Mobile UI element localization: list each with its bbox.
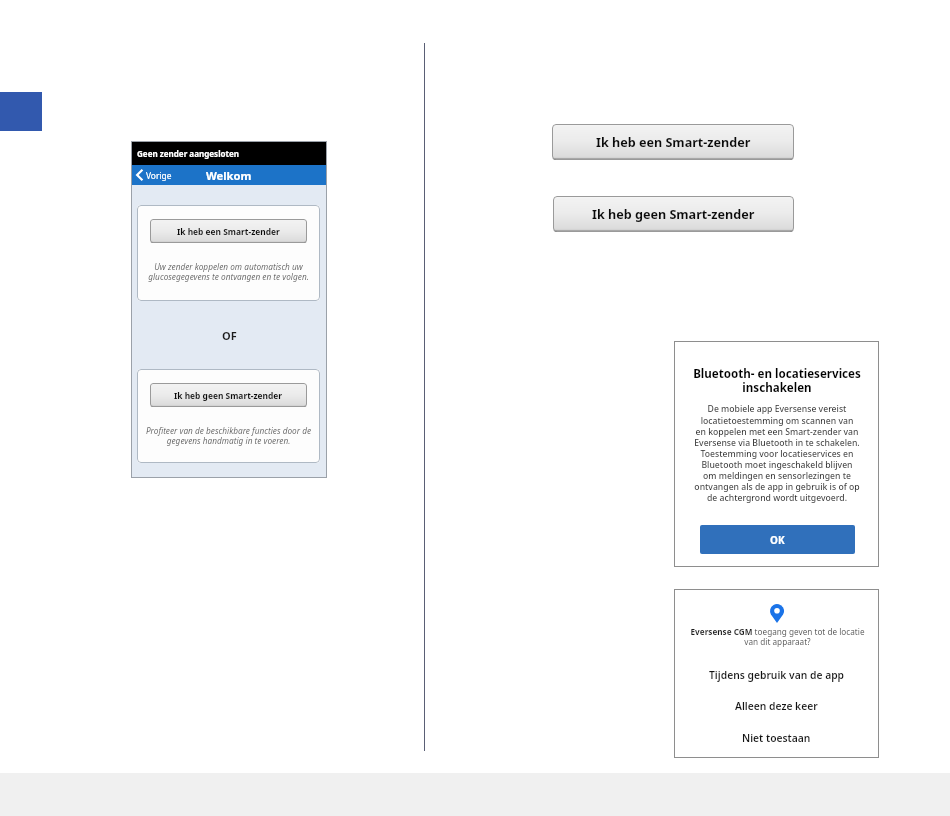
- staticText: Ik heb een Smart-zender: [596, 134, 751, 151]
- staticText: Welkom: [206, 168, 252, 183]
- staticText: Eversense CGM toegang geven tot de locat…: [690, 626, 865, 647]
- staticText: Uw zender koppelen om automatisch uw glu…: [145, 261, 312, 283]
- button[interactable]: Ik heb geen Smart-zender: [553, 196, 794, 232]
- button[interactable]: Ik heb een Smart-zender: [150, 219, 307, 243]
- staticText: Ik heb geen Smart-zender: [174, 390, 283, 401]
- other: Location: [770, 604, 784, 623]
- button[interactable]: Ik heb een Smart-zender: [552, 124, 794, 160]
- staticText: Tijdens gebruik van de app: [709, 668, 845, 682]
- staticText: OK: [770, 533, 785, 547]
- button[interactable]: Alleen deze keer: [674, 696, 879, 716]
- staticText: De mobiele app Eversense vereist locatie…: [694, 403, 860, 503]
- staticText: Geen zender aangesloten: [137, 148, 240, 159]
- staticText: Ik heb een Smart-zender: [177, 226, 280, 237]
- staticText: Ik heb geen Smart-zender: [592, 206, 755, 223]
- other: Vorige: [136, 169, 143, 181]
- button[interactable]: OK: [700, 525, 855, 554]
- staticText: Bluetooth- en locatieservices inschakele…: [693, 366, 861, 395]
- staticText: Vorige: [146, 170, 172, 181]
- button[interactable]: Ik heb geen Smart-zender: [150, 383, 307, 407]
- button[interactable]: Tijdens gebruik van de app: [674, 665, 879, 685]
- button[interactable]: Niet toestaan: [674, 728, 879, 748]
- staticText: OF: [222, 328, 237, 343]
- staticText: Alleen deze keer: [735, 699, 818, 713]
- button[interactable]: Vorige: [136, 169, 172, 181]
- staticText: Niet toestaan: [742, 731, 811, 745]
- staticText: Profiteer van de beschikbare functies do…: [145, 425, 312, 447]
